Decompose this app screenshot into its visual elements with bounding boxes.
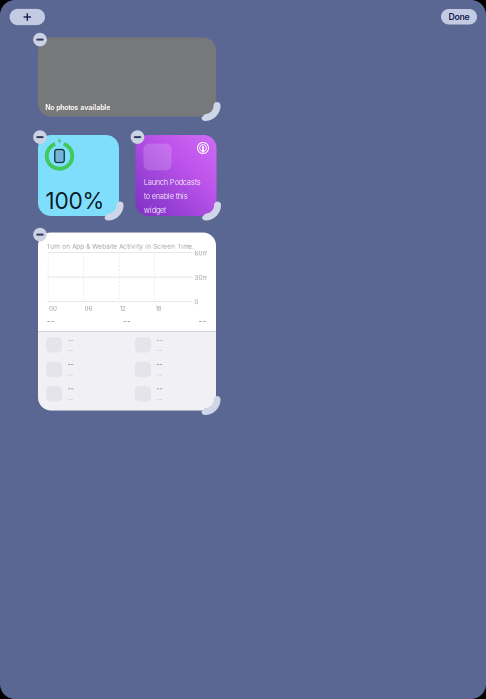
staticText: -- (156, 361, 162, 369)
button[interactable]: Resize widget (205, 105, 227, 127)
staticText: -- (68, 361, 74, 369)
staticText: 100% (45, 187, 104, 214)
staticText: -- (68, 395, 74, 403)
staticText: -- (156, 347, 162, 354)
button[interactable]: Done (441, 9, 477, 24)
staticText: 12 (120, 305, 126, 312)
button[interactable]: Add widget (10, 9, 45, 25)
staticText: -- (123, 316, 131, 326)
staticText: -- (47, 316, 55, 326)
staticText: 00 (49, 305, 57, 312)
button[interactable]: Remove widget (131, 130, 144, 144)
staticText: -- (68, 336, 74, 344)
button[interactable]: Turn on App & Website Activity in Screen… (38, 232, 216, 410)
staticText: -- (156, 395, 162, 403)
staticText: -- (68, 347, 74, 354)
button[interactable]: Remove widget (33, 228, 47, 241)
staticText: -- (156, 371, 162, 378)
button[interactable]: Resize widget (205, 205, 227, 227)
button[interactable]: No photos available (38, 37, 216, 116)
button[interactable]: Resize widget (108, 205, 130, 227)
staticText: -- (198, 316, 206, 326)
staticText: Launch Podcasts to enable this widget (144, 178, 201, 215)
button[interactable]: Remove widget (33, 130, 47, 144)
staticText: 30m (194, 274, 207, 281)
button[interactable]: Launch Podcasts to enable this widget (135, 135, 216, 216)
button[interactable]: Resize widget (205, 399, 227, 421)
staticText: 0 (194, 298, 198, 306)
staticText: -- (68, 385, 74, 393)
staticText: -- (156, 336, 162, 344)
staticText: Done (448, 11, 469, 22)
button[interactable]: Remove widget (33, 33, 47, 46)
staticText: Turn on App & Website Activity in Screen… (46, 243, 194, 250)
staticText: 60m (194, 250, 207, 257)
staticText: -- (156, 385, 162, 393)
staticText: 06 (84, 305, 92, 312)
staticText: 18 (155, 305, 161, 312)
button[interactable]: 100% (38, 135, 119, 216)
staticText: No photos available (45, 103, 110, 112)
staticText: -- (68, 371, 74, 378)
